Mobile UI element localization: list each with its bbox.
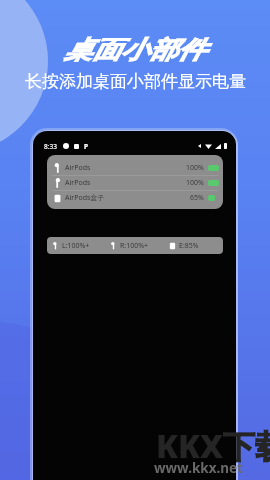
staticText: E:85% — [179, 241, 199, 251]
staticText: KKX下载 — [156, 424, 270, 468]
staticText: L:100%+ — [62, 241, 90, 251]
button[interactable]: AirPods — [47, 155, 223, 209]
staticText: AirPods — [65, 178, 91, 188]
staticText: 8:33 — [44, 142, 57, 150]
staticText: 65% — [190, 193, 204, 203]
staticText: www.kkx.net — [154, 459, 243, 477]
button[interactable]: L:100%+ — [47, 237, 223, 254]
staticText: AirPods盒子 — [65, 193, 105, 203]
staticText: 100% — [186, 163, 204, 173]
staticText: AirPods — [65, 163, 91, 173]
staticText: 桌面小部件 — [64, 35, 206, 65]
staticText: R:100%+ — [120, 241, 149, 251]
staticText: 长按添加桌面小部件显示电量 — [25, 71, 246, 92]
staticText: 100% — [186, 178, 204, 188]
staticText: P — [84, 142, 89, 150]
